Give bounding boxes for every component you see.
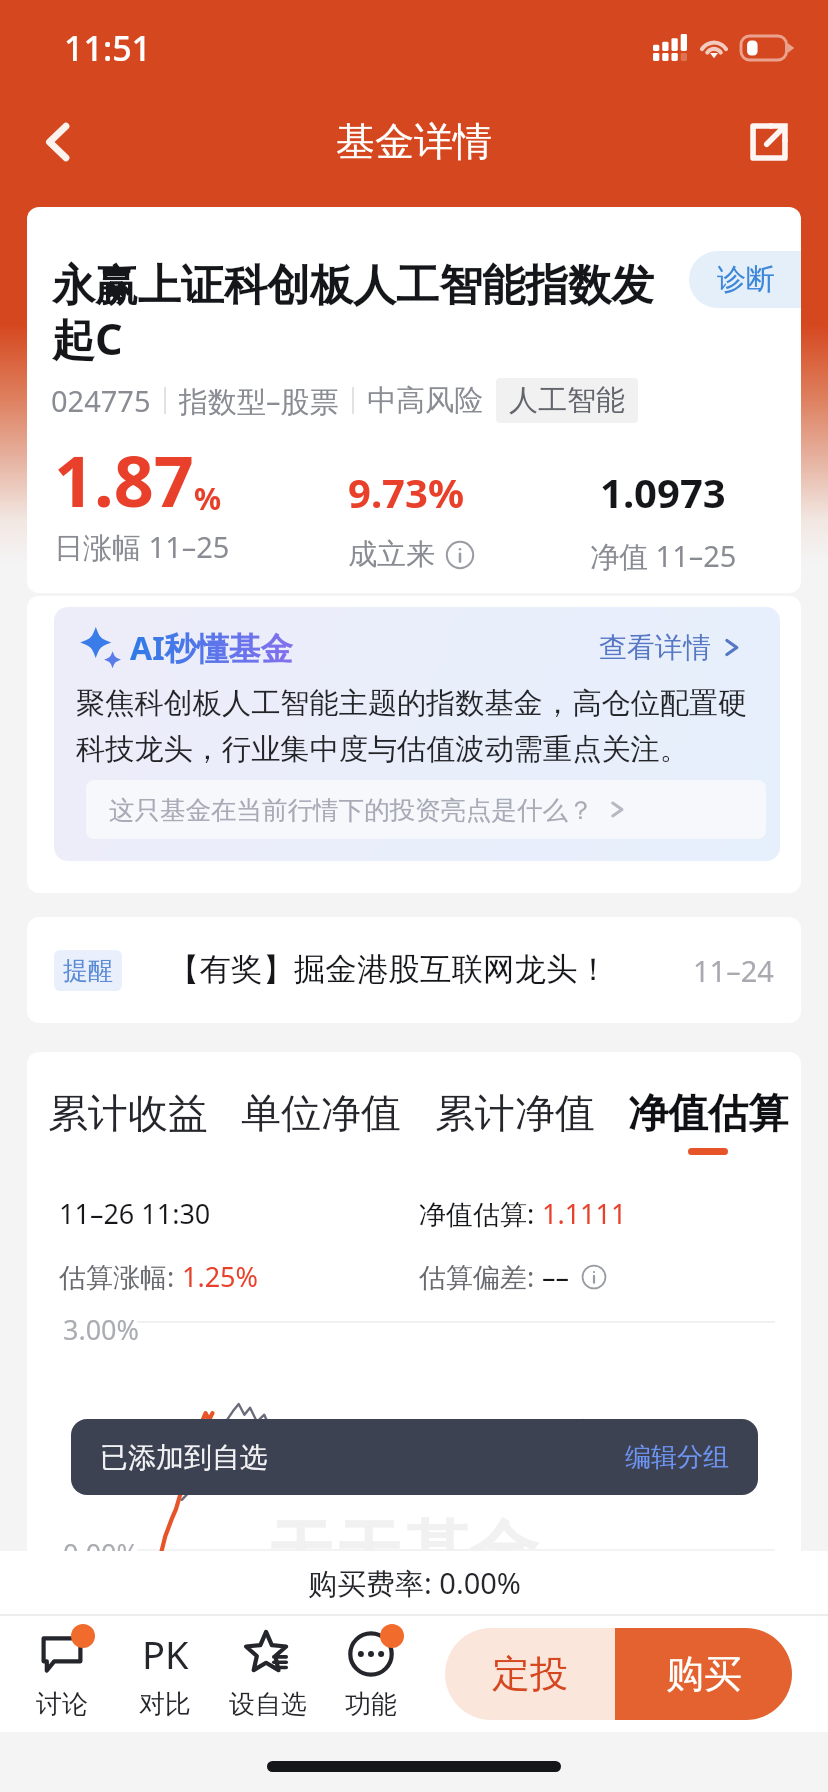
button[interactable]: 功能 xyxy=(319,1627,422,1721)
staticText: 聚焦科创板人工智能主题的指数基金，高仓位配置硬 科技龙头，行业集中度与估值波动需… xyxy=(76,685,776,768)
staticText: 单位净值 xyxy=(241,1088,401,1138)
button[interactable]: AI秒懂基金 xyxy=(54,607,780,861)
staticText: AI秒懂基金 xyxy=(130,626,293,670)
staticText: 设自选 xyxy=(229,1688,307,1721)
staticText: 1.25% xyxy=(182,1258,259,1295)
staticText: –– xyxy=(542,1258,569,1295)
button[interactable]: 编辑分组 xyxy=(625,1441,729,1474)
staticText: 中高风险 xyxy=(367,382,483,419)
staticText: 天天基金 xyxy=(266,1511,538,1551)
button[interactable]: PK xyxy=(113,1627,216,1721)
button[interactable]: 单位净值 xyxy=(241,1088,401,1155)
button[interactable]: 讨论 xyxy=(10,1627,113,1721)
staticText: 11:51 xyxy=(64,25,152,71)
staticText: 讨论 xyxy=(36,1688,88,1721)
staticText: 024775 xyxy=(51,381,151,420)
button[interactable]: 这只基金在当前行情下的投资亮点是什么？ xyxy=(86,780,766,839)
staticText: 累计净值 xyxy=(435,1088,595,1138)
button[interactable]: 净值估算 xyxy=(628,1088,788,1155)
staticText: 对比 xyxy=(139,1688,191,1721)
staticText: 11–26 11:30 xyxy=(59,1195,211,1232)
staticText: 功能 xyxy=(345,1688,397,1721)
staticText: 净值估算 xyxy=(628,1088,788,1138)
staticText: 1.1111 xyxy=(542,1195,627,1232)
button[interactable]: 诊断 xyxy=(689,251,801,308)
staticText: 人工智能 xyxy=(509,382,625,419)
button[interactable]: 查看详情 xyxy=(599,630,740,665)
staticText: % xyxy=(194,478,222,519)
button[interactable]: 设自选 xyxy=(216,1627,319,1721)
button[interactable]: 购买 xyxy=(615,1628,792,1720)
staticText: 估算涨幅: xyxy=(59,1258,182,1295)
staticText: 永赢上证科创板人工智能指数发 起C xyxy=(52,259,654,368)
button[interactable]: Share xyxy=(733,106,805,178)
staticText: 已添加到自选 xyxy=(100,1440,268,1475)
staticText: 购买费率: 0.00% xyxy=(308,1563,521,1603)
staticText: 累计收益 xyxy=(48,1088,208,1138)
staticText: 成立来 xyxy=(348,536,435,573)
staticText: 估算偏差: xyxy=(419,1258,542,1295)
staticText: 这只基金在当前行情下的投资亮点是什么？ xyxy=(109,794,594,826)
staticText: 3.00% xyxy=(63,1311,140,1348)
staticText: 日涨幅 11–25 xyxy=(54,527,230,567)
button[interactable]: 定投 xyxy=(445,1628,615,1720)
staticText: 编辑分组 xyxy=(625,1441,729,1474)
staticText: PK xyxy=(142,1628,189,1680)
staticText: 诊断 xyxy=(717,261,775,298)
staticText: 净值估算: xyxy=(419,1195,542,1232)
button[interactable]: Back xyxy=(21,106,93,178)
staticText: 购买 xyxy=(666,1650,742,1698)
staticText: 1.87 xyxy=(54,432,194,527)
staticText: 9.73% xyxy=(348,465,464,519)
button[interactable]: 累计净值 xyxy=(435,1088,595,1155)
staticText: 0.00% xyxy=(63,1535,140,1551)
staticText: 定投 xyxy=(492,1650,568,1698)
staticText: 净值 11–25 xyxy=(590,536,737,576)
staticText: 【有奖】掘金港股互联网龙头！ xyxy=(168,950,609,990)
staticText: 1.0973 xyxy=(600,465,726,519)
staticText: 指数型–股票 xyxy=(179,381,339,421)
staticText: 11–24 xyxy=(693,951,774,990)
staticText: 基金详情 xyxy=(336,117,492,166)
button[interactable]: 提醒 xyxy=(27,917,801,1023)
staticText: 查看详情 xyxy=(599,630,711,665)
button[interactable]: 累计收益 xyxy=(48,1088,208,1155)
staticText: 提醒 xyxy=(63,955,113,986)
